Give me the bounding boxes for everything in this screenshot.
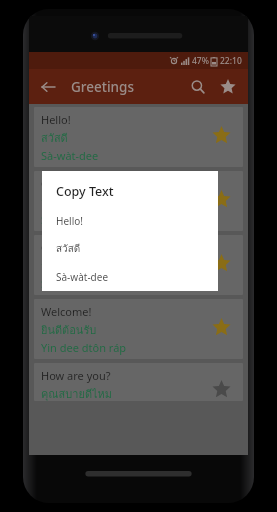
button[interactable]: Welcome!	[34, 299, 243, 359]
staticText: Hello!	[56, 214, 83, 228]
button[interactable]: Remove favorite	[208, 250, 234, 276]
staticText: How are you?	[41, 368, 111, 383]
button[interactable]: สวัสดี	[56, 241, 218, 257]
staticText: สวัสดี	[56, 241, 81, 257]
staticText: Sà-wàt-dee	[41, 148, 99, 163]
button[interactable]: Good morning!	[34, 171, 243, 231]
staticText: สวัสดีตอนเช้า	[41, 193, 107, 210]
staticText: Good morning!	[41, 176, 120, 191]
staticText: Hello!	[41, 112, 71, 127]
button[interactable]: Hello!	[34, 107, 243, 167]
button[interactable]: Back	[35, 74, 61, 100]
staticText: Welcome!	[41, 304, 92, 319]
staticText: Good evening!	[41, 240, 116, 255]
staticText: Copy Text	[56, 183, 114, 200]
button[interactable]: Search	[184, 73, 212, 101]
button[interactable]: Favorites	[214, 73, 242, 101]
button[interactable]: Remove favorite	[208, 314, 234, 340]
staticText: Yin dee dtôn ráp	[41, 340, 127, 355]
staticText: Greetings	[71, 78, 134, 96]
staticText: Sà-wàt-dee dton-cháo	[41, 212, 154, 227]
button[interactable]: Good evening!	[34, 235, 243, 295]
staticText: Sà-wàt-dee	[56, 270, 109, 284]
staticText: ยินดีต้อนรับ	[41, 321, 97, 338]
staticText: สวัสดี	[41, 129, 68, 146]
staticText: 22:10	[220, 55, 242, 67]
button[interactable]: Sà-wàt-dee	[56, 270, 218, 284]
button[interactable]: Remove favorite	[208, 122, 234, 148]
staticText: 47%	[192, 55, 209, 67]
button[interactable]: Remove favorite	[208, 186, 234, 212]
staticText: สวัสดีตอนเย็น	[41, 257, 107, 274]
staticText: Sà-wàt-dee dton-yen	[41, 276, 148, 291]
button[interactable]: Hello!	[56, 214, 218, 228]
button[interactable]: Add favorite	[208, 378, 234, 401]
staticText: คุณสบายดีไหม	[41, 385, 113, 401]
button[interactable]: How are you?	[34, 363, 243, 401]
